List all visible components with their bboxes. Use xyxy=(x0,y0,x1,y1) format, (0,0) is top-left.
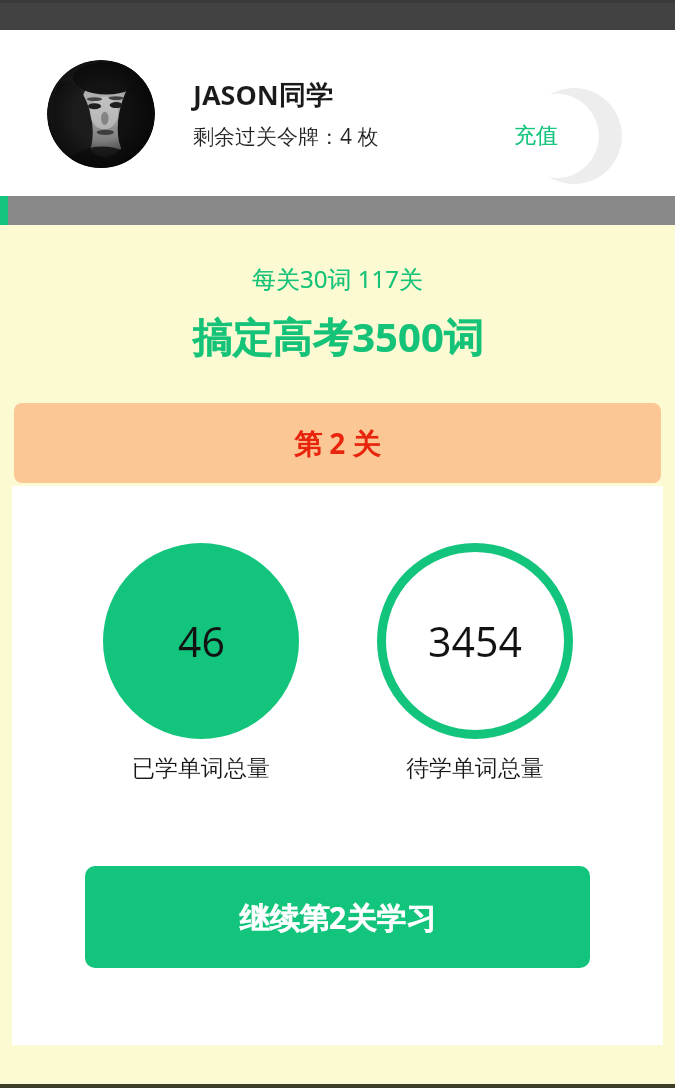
staticText: 搞定高考3500词 xyxy=(192,309,484,364)
button[interactable]: Profile photo xyxy=(47,60,155,168)
staticText: 3454 xyxy=(428,613,522,669)
staticText: 充值 xyxy=(514,122,558,150)
staticText: 已学单词总量 xyxy=(132,754,270,783)
staticText: 继续第2关学习 xyxy=(239,897,437,938)
staticText: 剩余过关令牌：4 枚 xyxy=(193,122,379,151)
staticText: 第 2 关 xyxy=(294,424,381,462)
button[interactable]: 第 2 关 xyxy=(14,403,661,483)
button[interactable]: 充值 xyxy=(492,88,622,184)
staticText: 每关30词 117关 xyxy=(252,262,423,295)
staticText: JASON同学 xyxy=(193,76,333,113)
staticText: 46 xyxy=(178,613,225,669)
staticText: 待学单词总量 xyxy=(406,754,544,783)
button[interactable]: 继续第2关学习 xyxy=(85,866,590,968)
